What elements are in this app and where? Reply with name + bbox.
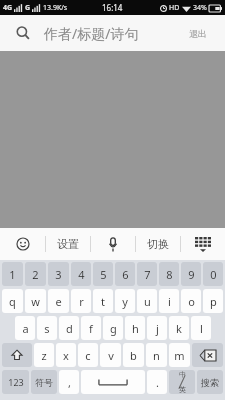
button[interactable]: . <box>147 370 167 394</box>
staticText: 4 <box>78 267 85 282</box>
button[interactable]: a <box>15 316 35 340</box>
button[interactable]: f <box>81 316 101 340</box>
staticText: p <box>210 294 217 309</box>
button[interactable]: 设置 <box>46 228 90 260</box>
staticText: g <box>110 321 117 336</box>
button[interactable]: 8 <box>159 262 179 286</box>
staticText: 8 <box>166 267 173 282</box>
staticText: 5 <box>100 267 107 282</box>
button[interactable]: m <box>169 343 190 367</box>
button[interactable]: i <box>159 289 179 313</box>
button[interactable]: 0 <box>203 262 223 286</box>
button[interactable]: t <box>93 289 113 313</box>
button[interactable]: 2 <box>25 262 46 286</box>
staticText: G <box>25 3 31 13</box>
button[interactable]: 3 <box>48 262 69 286</box>
staticText: c <box>85 348 91 363</box>
staticText: r <box>79 294 84 309</box>
button[interactable]: g <box>103 316 123 340</box>
staticText: 切换 <box>147 237 169 251</box>
staticText: 9 <box>188 267 195 282</box>
button[interactable]: s <box>37 316 57 340</box>
button[interactable]: Emoji <box>0 228 45 260</box>
staticText: t <box>101 294 105 309</box>
button[interactable]: v <box>100 343 121 367</box>
button[interactable]: 退出 <box>183 24 213 43</box>
button[interactable]: b <box>123 343 144 367</box>
button[interactable]: 5 <box>93 262 113 286</box>
staticText: 7 <box>144 267 151 282</box>
button[interactable]: 7 <box>137 262 157 286</box>
staticText: 2 <box>32 267 39 282</box>
staticText: b <box>130 348 137 363</box>
button[interactable]: z <box>34 343 54 367</box>
button[interactable]: 1 <box>2 262 23 286</box>
button[interactable]: r <box>71 289 91 313</box>
staticText: z <box>41 348 47 363</box>
button[interactable]: 符号 <box>31 370 57 394</box>
button[interactable]: j <box>147 316 167 340</box>
staticText: x <box>63 348 69 363</box>
staticText: 123 <box>8 376 24 388</box>
button[interactable]: u <box>137 289 157 313</box>
staticText: 搜索 <box>201 377 219 388</box>
button[interactable]: w <box>25 289 46 313</box>
staticText: y <box>122 294 128 309</box>
button[interactable]: o <box>181 289 201 313</box>
button[interactable]: Shift <box>2 343 32 367</box>
staticText: 13.9K/s <box>43 3 68 13</box>
button[interactable]: 6 <box>115 262 135 286</box>
staticText: , <box>68 375 71 390</box>
button[interactable]: q <box>2 289 23 313</box>
button[interactable]: Search <box>12 22 34 44</box>
staticText: 设置 <box>57 237 79 251</box>
staticText: l <box>200 321 203 336</box>
staticText: w <box>31 294 40 309</box>
button[interactable]: y <box>115 289 135 313</box>
button[interactable]: 4 <box>71 262 91 286</box>
button[interactable]: k <box>169 316 189 340</box>
staticText: i <box>168 294 171 309</box>
button[interactable]: Voice input <box>91 228 135 260</box>
staticText: 作者/标题/诗句 <box>44 24 139 43</box>
staticText: 3 <box>55 267 62 282</box>
staticText: HD <box>169 3 180 13</box>
staticText: f <box>89 321 93 336</box>
staticText: d <box>66 321 73 336</box>
staticText: h <box>132 321 139 336</box>
staticText: u <box>144 294 151 309</box>
button[interactable]: 123 <box>2 370 29 394</box>
button[interactable]: 搜索 <box>197 370 223 394</box>
button[interactable]: Backspace <box>192 343 223 367</box>
staticText: 4G <box>3 3 13 13</box>
staticText: n <box>153 348 160 363</box>
button[interactable]: l <box>191 316 211 340</box>
button[interactable]: c <box>78 343 98 367</box>
staticText: v <box>108 348 114 363</box>
button[interactable]: p <box>203 289 223 313</box>
staticText: a <box>22 321 29 336</box>
button[interactable]: Space <box>81 370 145 394</box>
staticText: o <box>188 294 195 309</box>
staticText: e <box>55 294 62 309</box>
button[interactable]: h <box>125 316 145 340</box>
button[interactable]: e <box>48 289 69 313</box>
staticText: 34% <box>193 3 207 13</box>
button[interactable]: x <box>56 343 76 367</box>
button[interactable]: Switch Chinese English <box>169 370 195 394</box>
staticText: 英 <box>179 385 186 394</box>
staticText: . <box>156 375 159 390</box>
staticText: k <box>176 321 182 336</box>
staticText: s <box>44 321 50 336</box>
staticText: q <box>9 294 16 309</box>
button[interactable]: d <box>59 316 79 340</box>
staticText: 16:14 <box>102 2 123 13</box>
button[interactable]: , <box>59 370 79 394</box>
button[interactable]: n <box>146 343 167 367</box>
button[interactable]: 9 <box>181 262 201 286</box>
staticText: 1 <box>9 267 16 282</box>
staticText: m <box>174 348 185 363</box>
staticText: 中 <box>179 370 186 379</box>
button[interactable]: 切换 <box>136 228 180 260</box>
button[interactable]: Hide keyboard <box>181 228 225 260</box>
